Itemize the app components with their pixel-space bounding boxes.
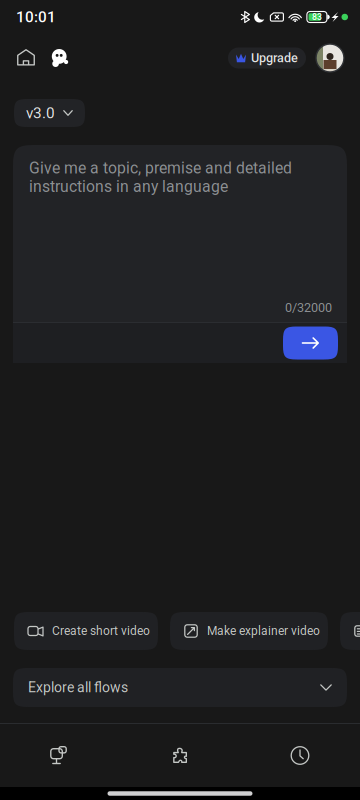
button[interactable]: Upgrade: [228, 47, 306, 68]
button[interactable]: Extensions: [145, 732, 215, 778]
staticText: 10:01: [16, 8, 56, 26]
button[interactable]: History: [265, 732, 335, 778]
button[interactable]: v3.0: [14, 99, 85, 127]
staticText: Make explainer video: [207, 624, 320, 638]
button[interactable]: Create short video: [14, 612, 158, 650]
button[interactable]: Profile: [316, 44, 344, 72]
button[interactable]: Explore all flows: [13, 668, 347, 707]
button[interactable]: Send: [283, 326, 338, 359]
staticText: 83: [312, 12, 322, 22]
button[interactable]: Home: [8, 38, 44, 78]
button[interactable]: Make explainer video: [170, 612, 328, 650]
staticText: Give me a topic, premise and detailed in…: [29, 159, 292, 196]
button[interactable]: Assistant: [44, 38, 76, 78]
staticText: Create short video: [52, 624, 150, 638]
button[interactable]: List: [340, 612, 360, 650]
staticText: v3.0: [26, 104, 55, 122]
staticText: 0/32000: [285, 300, 332, 315]
button[interactable]: Studio: [25, 732, 95, 778]
staticText: Upgrade: [251, 51, 298, 65]
staticText: Explore all flows: [28, 679, 128, 696]
